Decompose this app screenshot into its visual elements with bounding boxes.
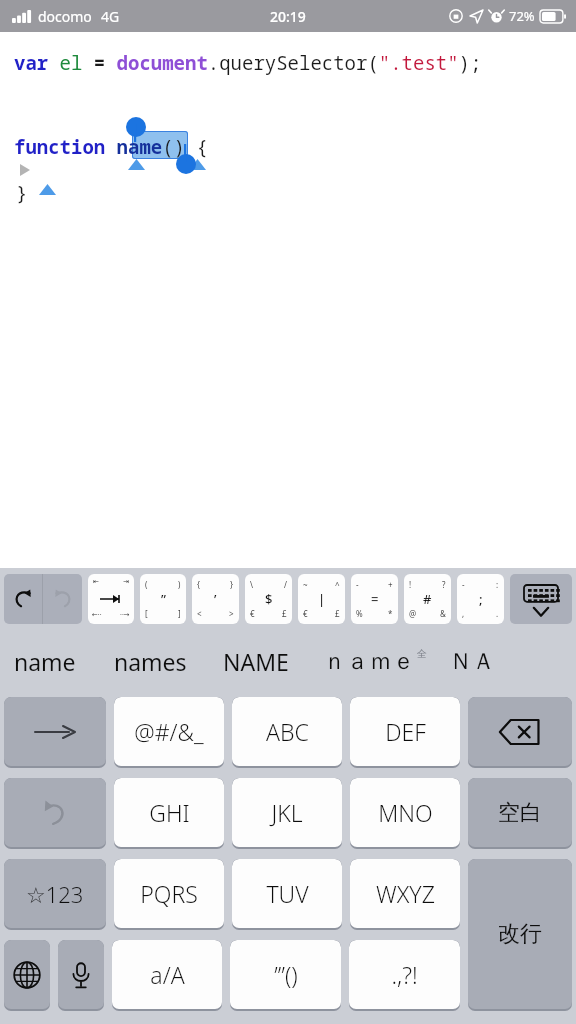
staticText: 改行 bbox=[498, 920, 542, 948]
staticText: ⇥ bbox=[123, 578, 129, 586]
button[interactable]: ☆123 bbox=[4, 859, 106, 928]
staticText: , bbox=[462, 608, 465, 619]
button[interactable]: GHI bbox=[114, 778, 224, 847]
staticText: @ bbox=[409, 608, 417, 619]
button[interactable]: PQRS bbox=[114, 859, 224, 928]
staticText: ←·· bbox=[92, 610, 102, 620]
staticText: 72% bbox=[509, 7, 535, 25]
button[interactable]: JKL bbox=[232, 778, 342, 847]
staticText: € bbox=[250, 608, 255, 619]
staticText: # bbox=[423, 590, 432, 608]
staticText: @#/&_ bbox=[134, 716, 204, 747]
button[interactable]: Redo bbox=[43, 574, 82, 624]
button[interactable]: name bbox=[14, 646, 76, 677]
staticText: 4G bbox=[101, 7, 120, 26]
staticText: 全 bbox=[417, 647, 427, 660]
staticText: £ bbox=[282, 608, 287, 619]
staticText: + bbox=[388, 579, 393, 590]
button[interactable]: Undo bbox=[4, 778, 106, 847]
button[interactable]: DEF bbox=[350, 697, 460, 766]
staticText: : bbox=[496, 579, 499, 590]
staticText: & bbox=[440, 608, 446, 619]
button[interactable]: NAME bbox=[223, 646, 289, 677]
button[interactable]: ABC bbox=[232, 697, 342, 766]
staticText: ! bbox=[409, 579, 412, 590]
staticText: ” bbox=[161, 590, 166, 608]
staticText: - bbox=[356, 579, 359, 590]
staticText: / bbox=[284, 579, 287, 590]
button[interactable]: .,?! bbox=[349, 940, 460, 1009]
staticText: ^ bbox=[335, 579, 340, 590]
button[interactable]: Hide keyboard bbox=[510, 574, 572, 624]
button[interactable]: ~ bbox=[298, 574, 345, 624]
staticText: ··→ bbox=[120, 610, 130, 620]
staticText: * bbox=[388, 608, 393, 619]
staticText: £ bbox=[335, 608, 340, 619]
staticText: [ bbox=[145, 608, 148, 619]
staticText: PQRS bbox=[140, 878, 198, 909]
staticText: } bbox=[230, 579, 234, 590]
staticText: { bbox=[197, 579, 201, 590]
staticText: = bbox=[371, 590, 379, 608]
button[interactable]: Move cursor right bbox=[4, 697, 106, 766]
staticText: - bbox=[462, 579, 465, 590]
staticText: $ bbox=[265, 590, 273, 608]
staticText: 20:19 bbox=[270, 7, 306, 26]
button[interactable]: ’”() bbox=[230, 940, 341, 1009]
staticText: GHI bbox=[149, 797, 190, 828]
staticText: .,?! bbox=[391, 959, 418, 990]
staticText: ? bbox=[442, 579, 446, 590]
staticText: function name() { bbox=[14, 134, 208, 160]
staticText: ’ bbox=[214, 590, 217, 608]
button[interactable]: 改行 bbox=[468, 859, 572, 1009]
button[interactable]: MNO bbox=[350, 778, 460, 847]
staticText: € bbox=[303, 608, 308, 619]
staticText: JKL bbox=[271, 797, 303, 828]
staticText: > bbox=[229, 608, 234, 619]
staticText: \ bbox=[250, 579, 253, 590]
button[interactable]: ! bbox=[404, 574, 451, 624]
staticText: ; bbox=[479, 590, 483, 608]
staticText: ABC bbox=[266, 716, 309, 747]
button[interactable]: \ bbox=[245, 574, 292, 624]
staticText: ] bbox=[178, 608, 181, 619]
button[interactable]: ( bbox=[140, 574, 186, 624]
staticText: } bbox=[16, 180, 28, 206]
button[interactable]: names bbox=[114, 646, 187, 677]
button[interactable]: - bbox=[351, 574, 398, 624]
staticText: ’”() bbox=[274, 959, 298, 990]
staticText: < bbox=[197, 608, 202, 619]
button[interactable]: Undo bbox=[4, 574, 42, 624]
staticText: docomo bbox=[38, 7, 92, 26]
staticText: ~ bbox=[303, 579, 308, 590]
button[interactable]: - bbox=[457, 574, 504, 624]
button[interactable]: ＮＡ bbox=[449, 647, 495, 676]
staticText: DEF bbox=[385, 716, 426, 747]
staticText: 空白 bbox=[498, 799, 542, 827]
staticText: % bbox=[356, 608, 363, 619]
button[interactable]: Dictation bbox=[58, 940, 104, 1009]
button[interactable]: a/A bbox=[112, 940, 222, 1009]
staticText: a/A bbox=[150, 959, 185, 990]
staticText: TUV bbox=[266, 878, 309, 909]
button[interactable]: { bbox=[192, 574, 239, 624]
staticText: | bbox=[318, 590, 326, 608]
button[interactable]: @#/&_ bbox=[114, 697, 224, 766]
button[interactable]: ⇤ bbox=[88, 574, 134, 624]
staticText: ⇤ bbox=[93, 578, 99, 586]
button[interactable]: ｎａｍｅ bbox=[323, 647, 415, 676]
staticText: ) bbox=[178, 579, 181, 590]
staticText: MNO bbox=[378, 797, 433, 828]
staticText: var el = document.querySelector(".test")… bbox=[14, 50, 482, 76]
button[interactable]: Delete bbox=[468, 697, 572, 766]
staticText: ☆123 bbox=[26, 879, 84, 909]
staticText: ( bbox=[145, 579, 148, 590]
button[interactable]: 空白 bbox=[468, 778, 572, 847]
button[interactable]: WXYZ bbox=[350, 859, 460, 928]
staticText: . bbox=[496, 608, 499, 619]
button[interactable]: TUV bbox=[232, 859, 342, 928]
button[interactable]: Switch keyboard bbox=[4, 940, 50, 1009]
staticText: WXYZ bbox=[376, 878, 435, 909]
